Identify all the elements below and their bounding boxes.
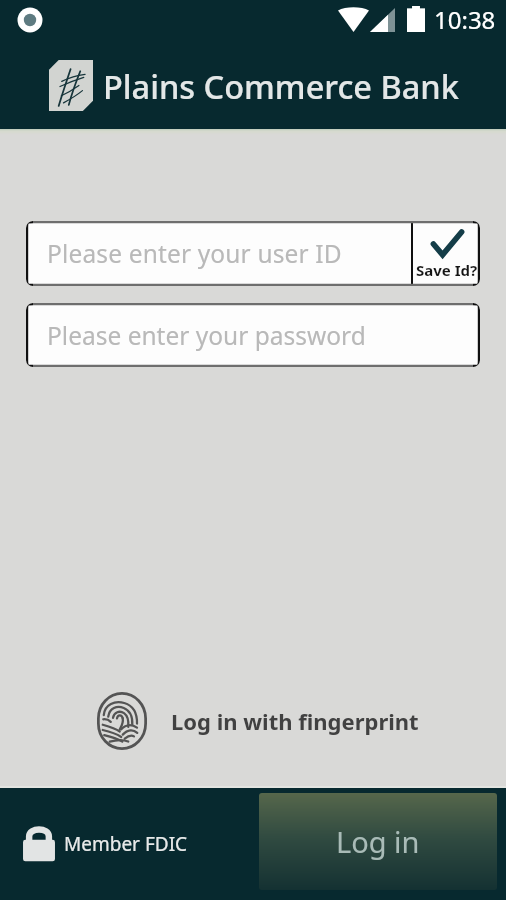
button[interactable]: Log in with fingerprint: [10, 692, 506, 750]
button[interactable]: Please enter your user ID: [26, 221, 411, 286]
button[interactable]: Log in: [259, 793, 497, 890]
button[interactable]: Member FDIC: [22, 825, 188, 862]
staticText: Plains Commerce Bank: [103, 64, 459, 108]
staticText: Please enter your password: [47, 319, 366, 352]
staticText: Please enter your user ID: [47, 237, 342, 270]
button[interactable]: Please enter your password: [26, 303, 480, 367]
staticText: Member FDIC: [64, 831, 188, 857]
staticText: 10:38: [434, 3, 496, 36]
staticText: Save Id?: [416, 260, 478, 280]
button[interactable]: Save Id: [413, 221, 480, 286]
staticText: Log in: [336, 822, 420, 861]
staticText: Log in with fingerprint: [171, 706, 419, 736]
